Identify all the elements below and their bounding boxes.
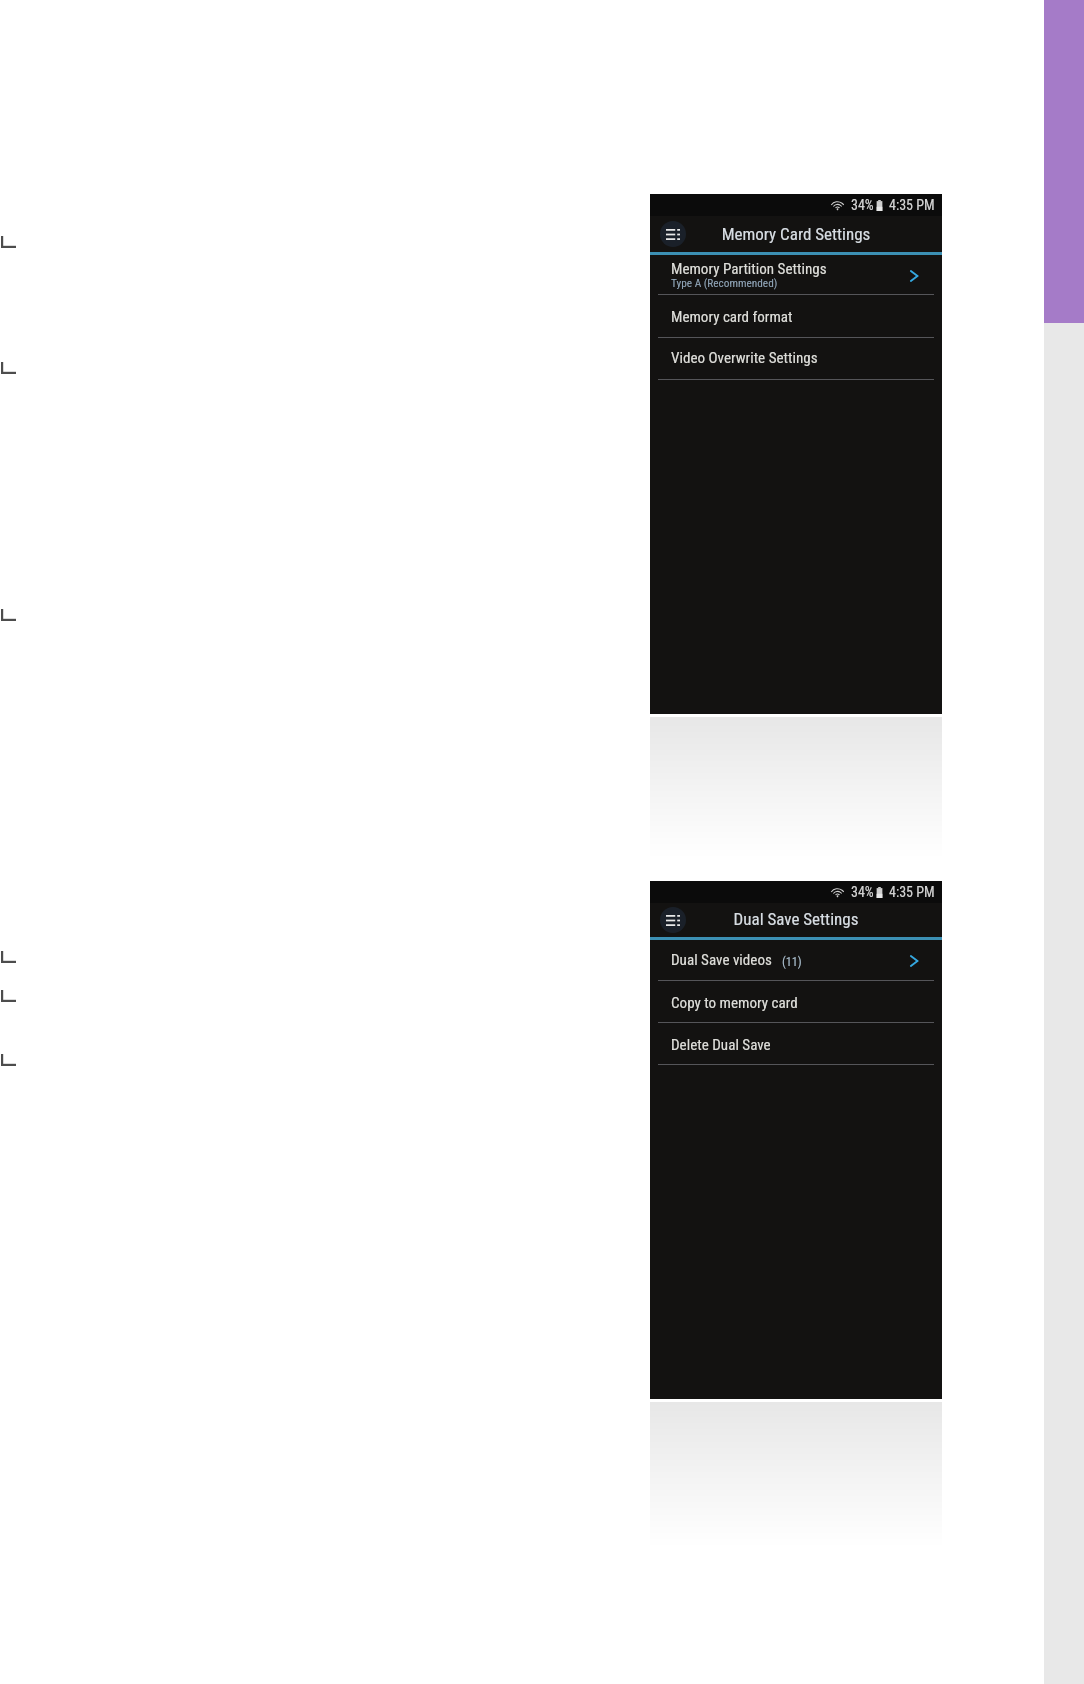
staticText: 34% [851,197,874,213]
staticText: Type A (Recommended) [671,277,778,290]
staticText: 34% [851,884,874,900]
staticText: Video Overwrite Settings [671,349,818,367]
staticText: Dual Save videos [671,951,772,969]
staticText: (11) [782,955,802,969]
button[interactable]: Dual Save videos [650,939,942,981]
staticText: Dual Save Settings [650,909,942,929]
button[interactable]: Memory card format [650,295,942,338]
button[interactable]: Open menu [660,907,686,933]
staticText: 4:35 PM [889,197,935,213]
button[interactable]: Delete Dual Save [650,1023,942,1065]
staticText: Memory card format [671,308,793,326]
button[interactable]: Video Overwrite Settings [650,338,942,380]
button[interactable]: Open menu [660,221,686,247]
button[interactable]: Memory Partition Settings [650,254,942,295]
staticText: Memory Card Settings [650,224,942,244]
button[interactable]: Copy to memory card [650,981,942,1023]
staticText: Copy to memory card [671,994,798,1012]
staticText: Delete Dual Save [671,1036,771,1054]
staticText: 4:35 PM [889,884,935,900]
staticText: Memory Partition Settings [671,260,827,278]
